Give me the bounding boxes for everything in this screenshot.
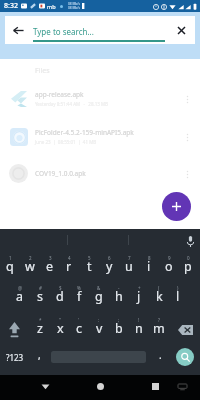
button[interactable]: %: [69, 285, 89, 311]
button[interactable]: Recent apps: [146, 377, 164, 395]
button[interactable]: ': [69, 317, 89, 343]
staticText: mb: [47, 3, 56, 10]
button[interactable]: (: [149, 285, 169, 311]
button[interactable]: @: [10, 285, 30, 311]
staticText: #: [39, 285, 42, 291]
staticText: 8: [148, 255, 151, 261]
button[interactable]: 6: [99, 255, 119, 281]
staticText: ): [177, 285, 179, 291]
staticText: ?: [158, 317, 160, 323]
button[interactable]: *: [30, 317, 50, 343]
button[interactable]: 9: [159, 255, 179, 281]
staticText: !: [138, 317, 140, 323]
button[interactable]: Home: [91, 377, 109, 395]
staticText: h: [115, 288, 123, 305]
button[interactable]: Voice input: [182, 233, 199, 250]
button[interactable]: 0: [178, 255, 198, 281]
button[interactable]: &: [89, 285, 109, 311]
staticText: (: [158, 285, 160, 291]
staticText: 4: [68, 255, 71, 261]
staticText: e: [46, 258, 54, 275]
staticText: k: [156, 288, 163, 305]
staticText: d: [56, 288, 64, 305]
button[interactable]: Clear search: [167, 16, 195, 44]
staticText: Type to search...: [33, 26, 94, 37]
staticText: s: [37, 288, 43, 305]
button[interactable]: 2: [20, 255, 40, 281]
staticText: j: [137, 288, 141, 305]
staticText: 08 Mb/s: [68, 2, 81, 6]
staticText: b: [115, 320, 123, 337]
button[interactable]: -: [109, 285, 129, 311]
staticText: -: [118, 285, 120, 291]
staticText: 8:32: [4, 1, 18, 11]
button[interactable]: ): [168, 285, 188, 311]
button[interactable]: !: [129, 317, 149, 343]
staticText: %: [77, 285, 81, 291]
button[interactable]: COV19_1.0.0.apk: [0, 157, 200, 190]
staticText: .: [159, 348, 162, 362]
staticText: g: [95, 288, 103, 305]
staticText: :: [98, 317, 100, 323]
button[interactable]: ": [50, 317, 70, 343]
button[interactable]: app-release.apk: [0, 82, 200, 115]
staticText: ,: [38, 348, 41, 362]
staticText: w: [25, 258, 35, 275]
button[interactable]: 5: [79, 255, 99, 281]
staticText: 6: [108, 255, 111, 261]
staticText: Yesterday 8:51:44 AM · 28.13 MB: [35, 101, 109, 107]
button[interactable]: 4: [59, 255, 79, 281]
staticText: 9: [168, 255, 171, 261]
button[interactable]: ?: [149, 317, 169, 343]
staticText: y: [106, 258, 113, 275]
staticText: n: [135, 320, 143, 337]
button[interactable]: Back: [5, 17, 31, 44]
staticText: app-release.apk: [35, 90, 84, 99]
staticText: 08 Mb/s: [68, 6, 81, 10]
button[interactable]: Switch keyboard: [173, 378, 191, 396]
staticText: 3: [49, 255, 52, 261]
button[interactable]: +: [129, 285, 149, 311]
staticText: u: [125, 258, 133, 275]
staticText: *: [39, 317, 42, 323]
staticText: 0: [187, 255, 190, 261]
staticText: r: [66, 258, 72, 275]
staticText: ': [78, 317, 80, 323]
button[interactable]: Back: [36, 377, 54, 395]
staticText: i: [147, 258, 151, 275]
staticText: ?123: [6, 352, 24, 363]
staticText: 2: [29, 255, 32, 261]
staticText: Files: [35, 66, 50, 76]
button[interactable]: Search: [176, 348, 194, 366]
button[interactable]: 8: [139, 255, 159, 281]
staticText: m: [153, 320, 165, 337]
button[interactable]: 7: [119, 255, 139, 281]
staticText: 1: [9, 255, 12, 261]
button[interactable]: 1: [0, 255, 20, 281]
button[interactable]: .: [152, 344, 168, 370]
button[interactable]: 3: [40, 255, 60, 281]
button[interactable]: $: [50, 285, 70, 311]
button[interactable]: #: [30, 285, 50, 311]
button[interactable]: Add: [162, 192, 191, 221]
staticText: p: [184, 258, 192, 275]
button[interactable]: ;: [109, 317, 129, 343]
staticText: +: [138, 285, 141, 291]
staticText: PicFolder-4.5.2-159-minAPI5.apk: [35, 128, 134, 137]
button[interactable]: ,: [31, 344, 47, 370]
staticText: x: [57, 320, 64, 337]
button[interactable]: Backspace: [172, 317, 198, 343]
staticText: ;: [118, 317, 120, 323]
staticText: c: [76, 320, 83, 337]
staticText: 7: [128, 255, 131, 261]
staticText: a: [16, 288, 24, 305]
button[interactable]: Shift: [1, 317, 28, 343]
button[interactable]: PicFolder-4.5.2-159-minAPI5.apk: [0, 120, 200, 153]
button[interactable]: ?123: [0, 344, 30, 370]
button[interactable]: :: [89, 317, 109, 343]
staticText: 5: [88, 255, 91, 261]
